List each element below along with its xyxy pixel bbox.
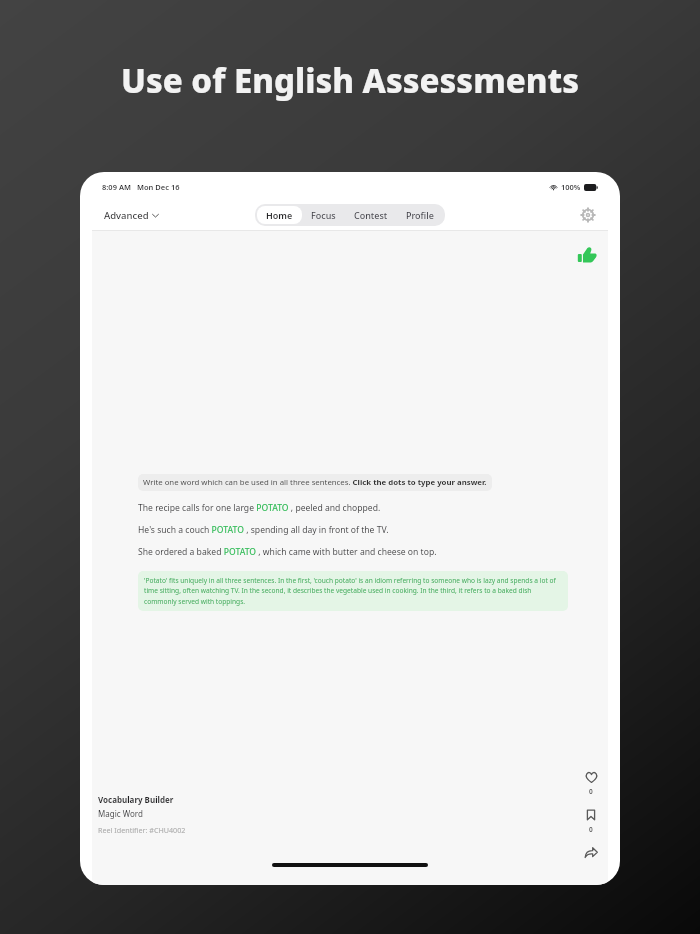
button[interactable]: Like xyxy=(581,767,601,787)
button[interactable]: Advanced xyxy=(102,207,161,224)
button[interactable]: Contest xyxy=(345,206,397,224)
button[interactable]: Correct answer xyxy=(574,243,600,269)
staticText: Advanced xyxy=(104,209,149,222)
staticText: 8:09 AM xyxy=(102,182,131,192)
staticText: She ordered a baked POTATO , which came … xyxy=(138,546,437,558)
staticText: Mon Dec 16 xyxy=(137,182,180,192)
staticText: Write one word which can be used in all … xyxy=(143,477,487,488)
staticText: Home xyxy=(266,209,293,221)
staticText: Use of English Assessments xyxy=(0,58,700,103)
staticText: Vocabulary Builder xyxy=(98,794,174,805)
button[interactable]: Home xyxy=(257,206,302,224)
staticText: 0 xyxy=(589,825,593,834)
staticText: He's such a couch POTATO , spending all … xyxy=(138,524,389,536)
button[interactable]: Bookmark xyxy=(581,805,601,825)
button[interactable]: Focus xyxy=(302,206,345,224)
staticText: 'Potato' fits uniquely in all three sent… xyxy=(144,576,562,606)
staticText: Magic Word xyxy=(98,808,143,819)
staticText: 0 xyxy=(589,787,593,796)
staticText: Profile xyxy=(406,209,434,221)
button[interactable]: Settings xyxy=(578,205,598,225)
staticText: The recipe calls for one large POTATO , … xyxy=(138,502,381,514)
button[interactable]: Share xyxy=(581,843,601,863)
staticText: Reel Identifier: #CHU4002 xyxy=(98,825,186,835)
staticText: Contest xyxy=(354,209,388,221)
staticText: Focus xyxy=(311,209,336,221)
button[interactable]: Profile xyxy=(397,206,443,224)
staticText: 100% xyxy=(561,182,581,192)
